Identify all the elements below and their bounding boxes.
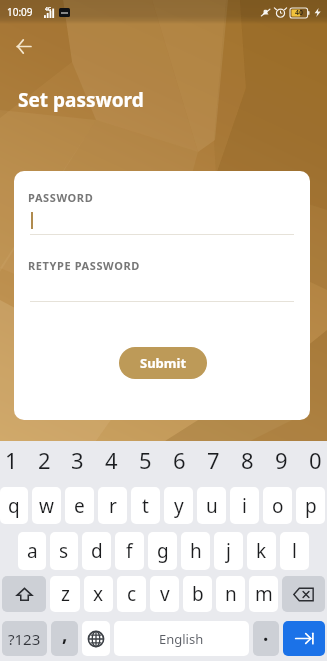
- staticText: h: [190, 538, 202, 564]
- staticText: PASSWORD: [28, 190, 94, 205]
- staticText: i: [242, 493, 247, 519]
- button[interactable]: u: [197, 487, 226, 524]
- staticText: o: [272, 493, 284, 519]
- staticText: .: [263, 621, 269, 647]
- staticText: 2: [38, 445, 51, 471]
- button[interactable]: h: [181, 532, 210, 570]
- button[interactable]: g: [148, 532, 177, 570]
- staticText: ?123: [8, 629, 41, 649]
- button[interactable]: 8: [230, 445, 264, 471]
- button[interactable]: 4: [94, 445, 128, 471]
- button[interactable]: m: [249, 576, 278, 612]
- button[interactable]: s: [50, 532, 78, 570]
- staticText: j: [226, 538, 231, 564]
- staticText: f: [126, 538, 133, 564]
- staticText: 3: [71, 445, 84, 471]
- staticText: Set password: [18, 87, 144, 113]
- button[interactable]: 2: [28, 445, 61, 471]
- button[interactable]: 7: [196, 445, 230, 471]
- staticText: v: [160, 581, 170, 607]
- button[interactable]: i: [230, 487, 259, 524]
- staticText: RETYPE PASSWORD: [28, 258, 140, 273]
- button[interactable]: d: [82, 532, 111, 570]
- button[interactable]: l: [280, 532, 309, 570]
- button[interactable]: o: [263, 487, 292, 524]
- button[interactable]: Change language: [82, 621, 110, 656]
- staticText: 9: [275, 445, 288, 471]
- button[interactable]: Back: [4, 26, 44, 66]
- button[interactable]: Shift: [2, 576, 46, 612]
- staticText: y: [174, 493, 184, 519]
- staticText: w: [39, 493, 54, 519]
- button[interactable]: Next: [283, 621, 325, 656]
- staticText: s: [59, 538, 69, 564]
- button[interactable]: ?123: [2, 621, 47, 656]
- staticText: 1: [5, 445, 18, 471]
- staticText: 5: [139, 445, 152, 471]
- staticText: English: [159, 630, 204, 648]
- staticText: 8: [241, 445, 254, 471]
- button[interactable]: .: [253, 621, 279, 656]
- staticText: ,: [62, 621, 68, 647]
- staticText: a: [27, 538, 38, 564]
- staticText: t: [142, 493, 149, 519]
- staticText: d: [91, 538, 103, 564]
- staticText: b: [192, 581, 204, 607]
- button[interactable]: 1: [0, 445, 28, 471]
- staticText: e: [74, 493, 85, 519]
- staticText: k: [256, 538, 267, 564]
- button[interactable]: 9: [264, 445, 298, 471]
- button[interactable]: y: [164, 487, 193, 524]
- button[interactable]: x: [84, 576, 113, 612]
- button[interactable]: r: [98, 487, 127, 524]
- other: Shift: [16, 586, 33, 603]
- other: Change language: [87, 630, 105, 648]
- staticText: m: [255, 581, 273, 607]
- button[interactable]: e: [65, 487, 94, 524]
- button[interactable]: 6: [162, 445, 196, 471]
- button[interactable]: 0: [298, 445, 327, 471]
- staticText: l: [292, 538, 297, 564]
- staticText: n: [225, 581, 237, 607]
- button[interactable]: 5: [128, 445, 162, 471]
- staticText: c: [127, 581, 137, 607]
- button[interactable]: c: [117, 576, 146, 612]
- button[interactable]: English: [114, 621, 249, 656]
- staticText: 4: [105, 445, 118, 471]
- button[interactable]: k: [247, 532, 276, 570]
- button[interactable]: f: [115, 532, 144, 570]
- button[interactable]: p: [296, 487, 325, 524]
- button[interactable]: b: [183, 576, 212, 612]
- button[interactable]: j: [214, 532, 243, 570]
- button[interactable]: a: [18, 532, 46, 570]
- staticText: q: [8, 493, 20, 519]
- button[interactable]: v: [150, 576, 179, 612]
- staticText: u: [206, 493, 218, 519]
- staticText: Submit: [140, 354, 187, 372]
- button[interactable]: Backspace: [282, 576, 325, 612]
- staticText: x: [93, 581, 104, 607]
- staticText: 10:09: [7, 5, 33, 19]
- other: Backspace: [293, 587, 314, 602]
- staticText: 7: [207, 445, 220, 471]
- staticText: 4G: [45, 6, 52, 13]
- button[interactable]: n: [216, 576, 245, 612]
- button[interactable]: t: [131, 487, 160, 524]
- staticText: 6: [173, 445, 186, 471]
- button[interactable]: q: [0, 487, 28, 524]
- button[interactable]: 3: [61, 445, 94, 471]
- button[interactable]: z: [50, 576, 80, 612]
- button[interactable]: ,: [51, 621, 78, 656]
- staticText: r: [109, 493, 117, 519]
- button[interactable]: w: [32, 487, 61, 524]
- staticText: 0: [309, 445, 322, 471]
- staticText: 40: [295, 8, 304, 18]
- staticText: z: [61, 581, 70, 607]
- staticText: p: [305, 493, 317, 519]
- button[interactable]: Submit: [119, 347, 207, 379]
- staticText: g: [157, 538, 169, 564]
